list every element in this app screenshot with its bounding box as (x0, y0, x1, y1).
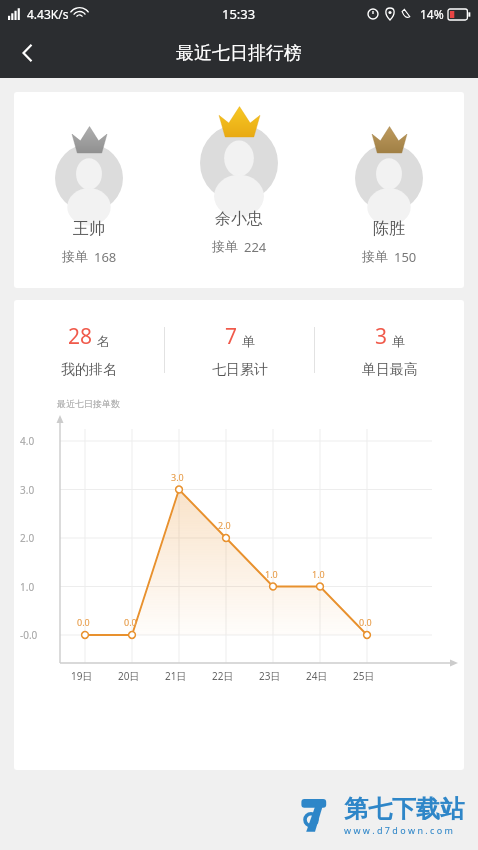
staticText: w w w . d 7 d o w n . c o m (344, 824, 453, 836)
staticText: 最近七日排行榜 (176, 42, 302, 65)
staticText: 224 (244, 238, 267, 256)
staticText: 3.0 (20, 483, 35, 497)
staticText: 2.0 (20, 531, 35, 545)
staticText: 最近七日接单数 (57, 398, 120, 409)
staticText: 24日 (306, 669, 328, 683)
staticText: 7 (225, 322, 238, 351)
staticText: 23日 (259, 669, 281, 683)
staticText: 25日 (353, 669, 375, 683)
staticText: 1.0 (265, 568, 278, 580)
staticText: 王帅 (73, 219, 105, 239)
staticText: 0.0 (77, 616, 90, 628)
staticText: 余小忠 (215, 209, 263, 229)
staticText: 单日最高 (362, 361, 418, 379)
staticText: 名 (97, 333, 110, 349)
staticText: 0.0 (359, 616, 372, 628)
staticText: 3.0 (171, 471, 184, 483)
button[interactable]: 3 (315, 322, 464, 379)
staticText: 14% (420, 6, 444, 22)
staticText: 我的排名 (61, 361, 117, 379)
staticText: 接单 (362, 248, 388, 264)
staticText: 接单 (212, 238, 238, 254)
staticText: 168 (94, 248, 117, 266)
staticText: 3 (375, 322, 388, 351)
button[interactable]: 陈胜 (314, 106, 464, 266)
button[interactable]: 余小忠 (164, 106, 314, 256)
staticText: 2.0 (218, 519, 231, 531)
staticText: 1.0 (312, 568, 325, 580)
staticText: 单 (392, 333, 405, 349)
staticText: 15:33 (222, 5, 256, 23)
staticText: 第七下载站 (344, 794, 464, 824)
staticText: -0.0 (20, 628, 38, 642)
staticText: 4.0 (20, 434, 35, 448)
staticText: 0.0 (124, 616, 137, 628)
staticText: 陈胜 (373, 219, 405, 239)
button[interactable]: Back (6, 31, 50, 75)
staticText: 28 (68, 322, 93, 351)
staticText: 1.0 (20, 580, 35, 594)
staticText: 19日 (71, 669, 93, 683)
staticText: 七日累计 (212, 361, 268, 379)
staticText: 150 (394, 248, 417, 266)
staticText: 22日 (212, 669, 234, 683)
staticText: 单 (242, 333, 255, 349)
button[interactable]: 王帅 (14, 106, 164, 266)
staticText: 4.43K/s (27, 6, 69, 22)
button[interactable]: 7 (165, 322, 314, 379)
staticText: 接单 (62, 248, 88, 264)
staticText: 20日 (118, 669, 140, 683)
staticText: 21日 (165, 669, 187, 683)
button[interactable]: 28 (14, 322, 164, 379)
